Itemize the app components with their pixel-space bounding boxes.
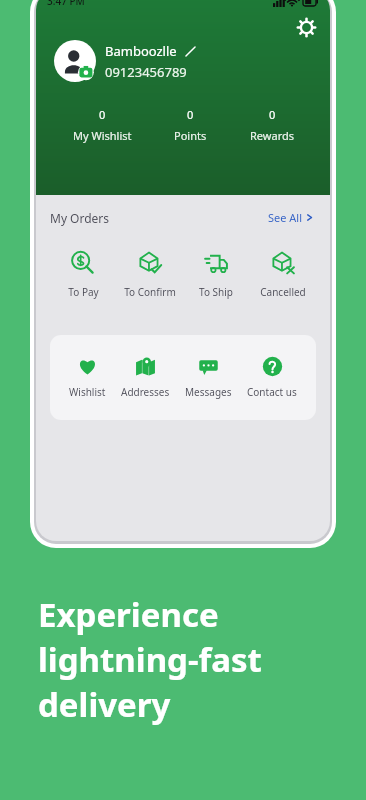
button[interactable]: Settings bbox=[293, 14, 319, 40]
staticText: Messages bbox=[185, 385, 232, 399]
staticText: 0 bbox=[99, 107, 106, 122]
staticText: Bamboozlle bbox=[105, 42, 177, 60]
staticText: See All bbox=[268, 210, 303, 225]
staticText: Addresses bbox=[121, 385, 170, 399]
staticText: 3:47 PM bbox=[47, 0, 85, 8]
staticText: Contact us bbox=[247, 385, 297, 399]
staticText: My Wishlist bbox=[73, 128, 132, 143]
staticText: To Pay bbox=[68, 285, 99, 299]
button[interactable]: See All bbox=[265, 207, 316, 228]
button[interactable]: Messages bbox=[183, 353, 234, 402]
staticText: lightning-fast bbox=[38, 637, 262, 682]
button[interactable]: Wishlist bbox=[67, 353, 108, 402]
staticText: Cancelled bbox=[260, 285, 306, 299]
button[interactable]: To Pay bbox=[50, 248, 116, 301]
staticText: Wishlist bbox=[69, 385, 106, 399]
staticText: My Orders bbox=[50, 210, 110, 226]
button[interactable]: 0 bbox=[168, 105, 213, 145]
button[interactable]: Addresses bbox=[119, 353, 172, 402]
staticText: Points bbox=[174, 128, 207, 143]
button[interactable]: Change photo bbox=[54, 40, 96, 82]
button[interactable]: 0 bbox=[67, 105, 138, 145]
staticText: 0 bbox=[187, 107, 194, 122]
staticText: delivery bbox=[38, 682, 171, 727]
button[interactable]: Edit name bbox=[184, 45, 197, 58]
button[interactable]: To Confirm bbox=[117, 248, 183, 301]
button[interactable]: Cancelled bbox=[250, 248, 316, 301]
staticText: To Confirm bbox=[124, 285, 176, 299]
button[interactable]: 0 bbox=[244, 105, 300, 145]
staticText: Experience bbox=[38, 592, 219, 637]
staticText: Rewards bbox=[250, 128, 294, 143]
staticText: 0 bbox=[269, 107, 276, 122]
staticText: To Ship bbox=[199, 285, 233, 299]
button[interactable]: To Ship bbox=[183, 248, 249, 301]
button[interactable]: Contact us bbox=[245, 353, 299, 402]
staticText: 09123456789 bbox=[105, 63, 187, 81]
